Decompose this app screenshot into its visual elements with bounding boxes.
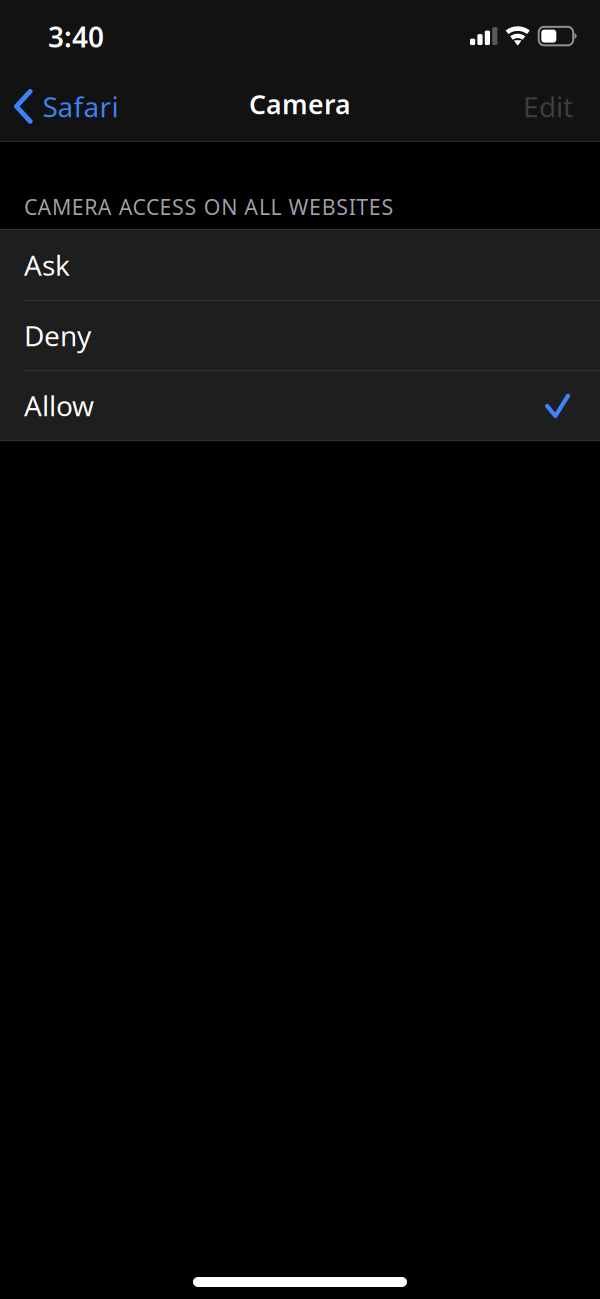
staticText: CAMERA ACCESS ON ALL WEBSITES [24,193,393,221]
staticText: Deny [24,317,91,354]
staticText: Edit [523,88,573,125]
button[interactable]: Allow [0,371,600,440]
staticText: Allow [24,387,94,424]
button[interactable]: Deny [0,301,600,371]
staticText: 3:40 [48,18,104,55]
button[interactable]: Edit [509,72,587,140]
button[interactable]: Ask [0,230,600,301]
staticText: Ask [24,246,70,284]
staticText: Safari [43,88,119,125]
button[interactable]: Safari [0,72,131,140]
staticText: Camera [249,86,351,122]
